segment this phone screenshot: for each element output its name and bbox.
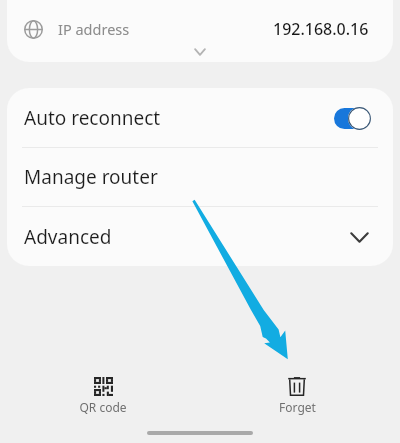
staticText: Forget xyxy=(279,399,316,415)
button[interactable]: IP address xyxy=(7,6,393,52)
button[interactable]: Manage router xyxy=(7,148,393,206)
staticText: IP address xyxy=(58,19,130,39)
button[interactable]: Advanced xyxy=(7,207,393,266)
staticText: Auto reconnect xyxy=(24,105,161,131)
staticText: 192.168.0.16 xyxy=(273,18,369,40)
staticText: QR code xyxy=(79,399,127,415)
staticText: Advanced xyxy=(24,224,112,250)
staticText: Manage router xyxy=(24,164,158,190)
button[interactable]: Auto reconnect xyxy=(7,88,393,147)
button[interactable]: Show QR code xyxy=(53,374,153,415)
button[interactable]: Forget network xyxy=(247,374,347,415)
